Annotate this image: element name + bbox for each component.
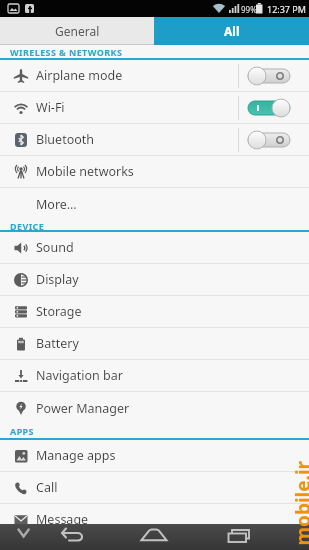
button[interactable]: Sound [0, 232, 309, 264]
button[interactable]: Power Manager [0, 392, 309, 424]
button[interactable]: Storage [0, 296, 309, 328]
staticText: All [224, 23, 240, 39]
staticText: Power Manager [36, 400, 130, 417]
button[interactable]: More… [0, 188, 309, 220]
staticText: 99% [241, 4, 257, 15]
staticText: Navigation bar [36, 367, 123, 384]
staticText: Mobile networks [36, 163, 134, 180]
staticText: Manage apps [36, 447, 116, 464]
button[interactable]: Mobile networks [0, 156, 309, 188]
staticText: More… [36, 196, 77, 213]
staticText: DEVICE [10, 220, 45, 230]
button[interactable]: All [154, 17, 309, 45]
staticText: mobile.ir [289, 460, 309, 545]
button[interactable]: Wi-Fi [0, 92, 309, 124]
staticText: Storage [36, 303, 82, 320]
staticText: Message [36, 511, 89, 528]
button[interactable] [248, 130, 290, 150]
button[interactable] [248, 98, 290, 118]
staticText: Bluetooth [36, 131, 95, 148]
staticText: APPS [10, 425, 34, 437]
button[interactable]: Display [0, 264, 309, 296]
button[interactable]: Bluetooth [0, 124, 309, 156]
button[interactable]: Battery [0, 328, 309, 360]
staticText: 12:37 PM [267, 3, 306, 15]
staticText: Battery [36, 335, 79, 352]
staticText: WIRELESS & NETWORKS [10, 46, 123, 58]
button[interactable]: Navigation bar [0, 360, 309, 392]
staticText: Call [36, 479, 58, 496]
button[interactable] [248, 66, 290, 86]
staticText: Sound [36, 239, 74, 256]
staticText: Airplane mode [36, 67, 123, 84]
staticText: Wi-Fi [36, 99, 65, 116]
staticText: General [55, 23, 100, 39]
button[interactable]: Airplane mode [0, 60, 309, 92]
button[interactable]: Message [0, 504, 309, 536]
button[interactable]: Manage apps [0, 440, 309, 472]
button[interactable]: Call [0, 472, 309, 504]
button[interactable]: General [0, 17, 154, 45]
staticText: Display [36, 271, 79, 288]
